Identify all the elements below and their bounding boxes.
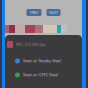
button[interactable]: NEXT — [46, 9, 60, 16]
staticText: Share on 'OFFC Share' — [23, 73, 59, 77]
button[interactable]: Share on 'Nearby Share' — [6, 54, 82, 68]
staticText: IMG_0123456.jpg — [16, 42, 45, 47]
button[interactable]: PREV — [26, 9, 41, 16]
staticText: PREV — [30, 10, 38, 15]
staticText: NEXT — [49, 10, 58, 15]
staticText: Share on 'Nearby Share' — [23, 59, 62, 63]
button[interactable]: Share on 'OFFC Share' — [6, 68, 82, 82]
